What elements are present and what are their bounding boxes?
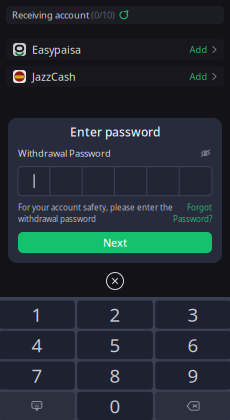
staticText: 3 (188, 302, 199, 327)
staticText: 7 (31, 363, 42, 388)
button[interactable]: 8 (77, 361, 153, 389)
staticText: 8 (109, 363, 120, 388)
button[interactable]: JazzCash (6, 66, 224, 87)
button[interactable]: 7 (0, 361, 75, 389)
button[interactable]: Hide keyboard (0, 392, 75, 420)
staticText: Withdrawal Password (18, 147, 111, 159)
staticText: withdrawal password (18, 214, 96, 224)
button[interactable]: Forgot (173, 202, 212, 224)
staticText: Receiving account (12, 9, 89, 21)
button[interactable]: 1 (0, 300, 75, 329)
button[interactable]: Next (18, 232, 212, 253)
button[interactable]: 9 (155, 361, 230, 389)
button[interactable]: Show password (199, 148, 212, 159)
button[interactable]: 6 (155, 331, 230, 359)
button[interactable]: 3 (155, 300, 230, 329)
button[interactable]: Easypaisa (6, 39, 224, 60)
staticText: For your account safety, please enter th… (18, 202, 173, 213)
staticText: JazzCash (32, 69, 76, 84)
staticText: Add (190, 43, 208, 56)
button[interactable]: 4 (0, 331, 75, 359)
staticText: Enter password (70, 124, 160, 140)
button[interactable]: 2 (77, 300, 153, 329)
button[interactable]: 0 (77, 392, 153, 420)
button[interactable]: Close (103, 269, 127, 293)
staticText: Password? (173, 214, 212, 224)
staticText: Easypaisa (32, 42, 81, 57)
staticText: 4 (31, 333, 42, 357)
staticText: Add (190, 70, 208, 83)
staticText: 9 (188, 363, 199, 388)
button[interactable]: 5 (77, 331, 153, 359)
staticText: 5 (109, 333, 120, 357)
staticText: (0/10) (89, 9, 115, 21)
staticText: 0 (109, 393, 120, 418)
staticText: Forgot (187, 202, 212, 213)
staticText: 6 (188, 333, 199, 357)
button[interactable]: Delete (155, 392, 230, 420)
staticText: 2 (109, 302, 120, 327)
staticText: Next (103, 235, 127, 250)
staticText: 1 (31, 302, 42, 327)
